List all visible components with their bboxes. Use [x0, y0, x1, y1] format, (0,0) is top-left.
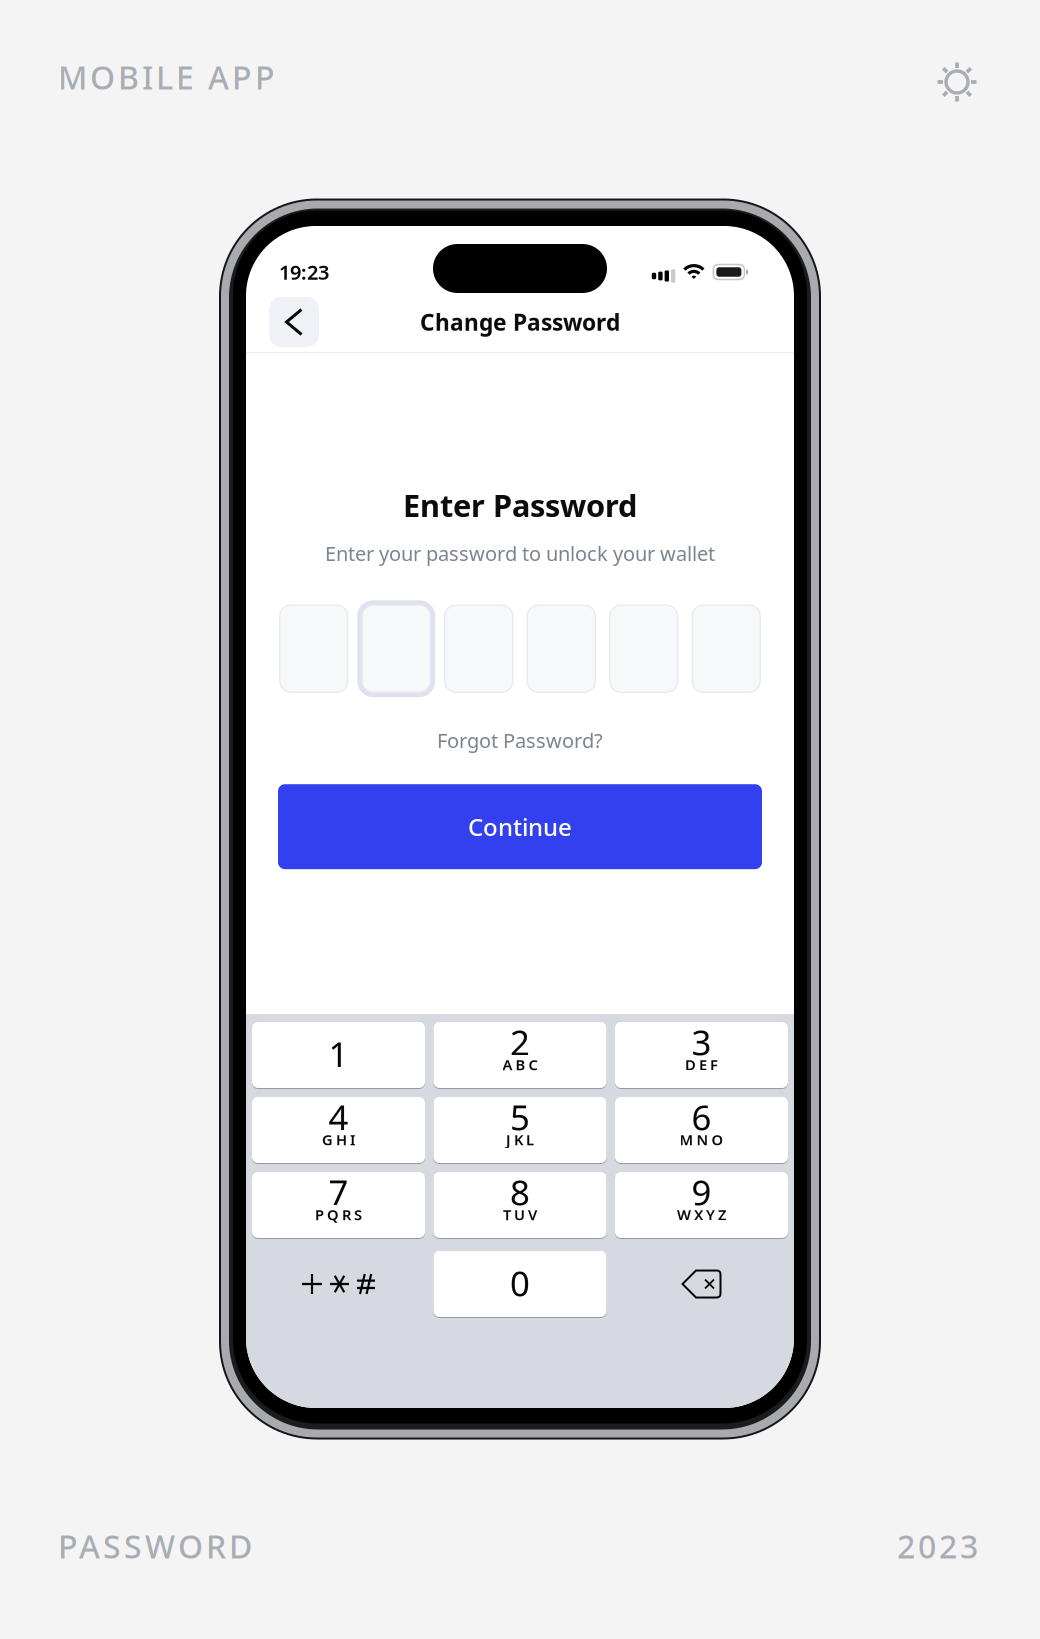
staticText: 19:23 — [279, 259, 329, 285]
staticText: 9 — [691, 1169, 711, 1215]
staticText: PQRS — [315, 1205, 362, 1224]
button[interactable]: Toggle appearance — [933, 58, 981, 106]
staticText: 2 — [510, 1019, 530, 1065]
button[interactable]: 3 — [615, 1022, 788, 1088]
staticText: MNO — [679, 1130, 723, 1149]
staticText: Enter Password — [403, 485, 637, 525]
staticText: 1 — [328, 1031, 348, 1077]
staticText: 6 — [691, 1094, 711, 1140]
button[interactable]: 8 — [433, 1172, 606, 1238]
staticText: DEF — [685, 1055, 718, 1074]
staticText: WXYZ — [677, 1205, 726, 1224]
staticText: TUV — [503, 1205, 537, 1224]
staticText: GHI — [322, 1130, 355, 1149]
staticText: Enter your password to unlock your walle… — [325, 540, 715, 566]
staticText: 4 — [328, 1094, 348, 1140]
button[interactable]: Delete — [615, 1251, 788, 1317]
button[interactable]: Forgot Password? — [437, 726, 603, 754]
button[interactable]: Continue — [278, 784, 762, 869]
staticText: Continue — [468, 811, 572, 843]
staticText: JKL — [506, 1130, 534, 1149]
button[interactable]: Symbols — [252, 1251, 425, 1317]
button[interactable]: 6 — [615, 1097, 788, 1163]
button[interactable]: Back — [269, 297, 319, 347]
button[interactable]: 2 — [433, 1022, 606, 1088]
staticText: 7 — [328, 1169, 348, 1215]
staticText: 2023 — [897, 1525, 978, 1567]
button[interactable]: 4 — [252, 1097, 425, 1163]
staticText: 0 — [510, 1260, 530, 1306]
staticText: 5 — [510, 1094, 530, 1140]
staticText: Forgot Password? — [437, 727, 603, 753]
button[interactable]: 7 — [252, 1172, 425, 1238]
staticText: 3 — [691, 1019, 711, 1065]
button[interactable]: 9 — [615, 1172, 788, 1238]
button[interactable]: 0 — [433, 1251, 606, 1317]
staticText: ABC — [502, 1055, 537, 1074]
staticText: 8 — [510, 1169, 530, 1215]
staticText: MOBILE APP — [58, 56, 275, 98]
button[interactable]: 5 — [433, 1097, 606, 1163]
staticText: Change Password — [420, 307, 620, 337]
button[interactable]: 1 — [252, 1022, 425, 1088]
staticText: PASSWORD — [58, 1525, 252, 1567]
